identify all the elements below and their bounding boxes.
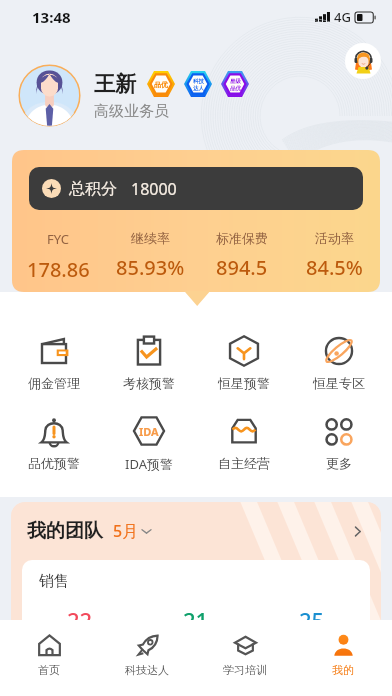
staticText: 科技 达人 bbox=[193, 78, 204, 91]
staticText: 更多 bbox=[326, 455, 352, 471]
button[interactable]: 活动率 bbox=[288, 230, 380, 281]
staticText: 恒星预警 bbox=[218, 375, 270, 391]
staticText: 学习培训 bbox=[223, 663, 267, 677]
button[interactable]: 恒星预警 bbox=[196, 336, 291, 391]
staticText: 5月 bbox=[113, 520, 139, 542]
staticText: 星级 品优 bbox=[230, 78, 241, 91]
button[interactable]: 我的 bbox=[294, 620, 392, 696]
button[interactable]: 恒星专区 bbox=[291, 336, 386, 391]
staticText: 王新 bbox=[94, 71, 136, 97]
staticText: 21 bbox=[183, 605, 209, 620]
staticText: IDA预警 bbox=[125, 455, 173, 473]
staticText: 894.5 bbox=[216, 254, 268, 281]
staticText: 总积分 bbox=[69, 179, 117, 199]
button[interactable]: 查看全部团队 bbox=[346, 520, 368, 542]
staticText: 84.5% bbox=[306, 254, 363, 281]
staticText: 恒星专区 bbox=[313, 375, 365, 391]
staticText: 继续率 bbox=[131, 230, 170, 246]
staticText: 科技达人 bbox=[125, 663, 169, 677]
button[interactable]: 自主经营 bbox=[196, 416, 291, 471]
staticText: 销售 bbox=[39, 572, 69, 591]
staticText: 品优 bbox=[154, 80, 168, 89]
staticText: 我的 bbox=[332, 663, 354, 677]
staticText: 18000 bbox=[131, 178, 177, 200]
button[interactable]: 佣金管理 bbox=[6, 336, 101, 391]
staticText: 品优预警 bbox=[28, 455, 80, 471]
button[interactable]: 首页 bbox=[0, 620, 98, 696]
staticText: 178.86 bbox=[27, 256, 90, 283]
staticText: IDA bbox=[139, 424, 159, 439]
staticText: 佣金管理 bbox=[28, 375, 80, 391]
button[interactable]: 学习培训 bbox=[196, 620, 294, 696]
staticText: 22 bbox=[67, 605, 93, 620]
button[interactable]: 总积分 bbox=[29, 167, 363, 210]
staticText: 高级业务员 bbox=[94, 102, 169, 121]
button[interactable]: 标准保费 bbox=[196, 230, 288, 281]
staticText: 25 bbox=[299, 605, 325, 620]
button[interactable]: 更多 bbox=[291, 416, 386, 471]
staticText: 自主经营 bbox=[218, 455, 270, 471]
button[interactable]: 品优预警 bbox=[6, 416, 101, 471]
staticText: 我的团队 bbox=[27, 519, 103, 543]
staticText: 考核预警 bbox=[123, 375, 175, 391]
staticText: FYC bbox=[47, 230, 70, 248]
staticText: 活动率 bbox=[315, 230, 354, 246]
button[interactable]: 科技达人 bbox=[98, 620, 196, 696]
staticText: 13:48 bbox=[32, 7, 71, 27]
staticText: 首页 bbox=[38, 663, 60, 677]
staticText: 标准保费 bbox=[216, 230, 268, 246]
button[interactable]: 继续率 bbox=[104, 230, 196, 281]
button[interactable]: IDA bbox=[101, 416, 196, 473]
button[interactable]: FYC bbox=[12, 230, 104, 283]
staticText: 4G bbox=[334, 8, 351, 26]
button[interactable]: 5月 bbox=[113, 520, 151, 542]
button[interactable]: 在线客服 bbox=[345, 43, 381, 79]
button[interactable]: 考核预警 bbox=[101, 336, 196, 391]
staticText: 85.93% bbox=[116, 254, 185, 281]
